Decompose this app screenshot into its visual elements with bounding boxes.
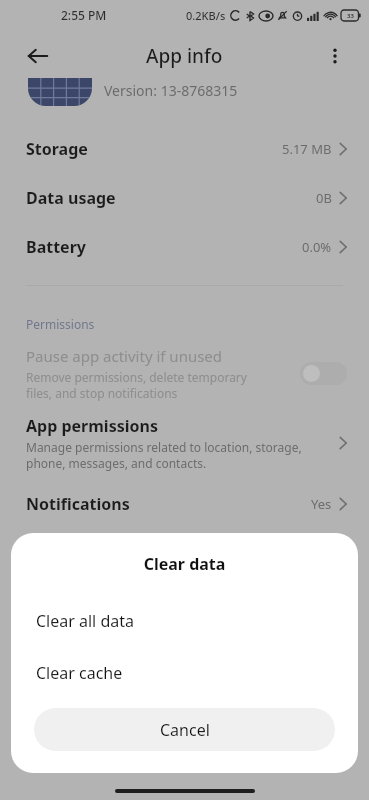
button[interactable]: Clear cache xyxy=(11,651,358,695)
button[interactable]: Cancel xyxy=(34,708,335,751)
staticText: 0.2KB/s xyxy=(186,8,226,23)
staticText: 2:55 PM xyxy=(61,7,107,23)
staticText: Battery xyxy=(26,236,86,258)
button[interactable]: Notifications xyxy=(0,489,369,519)
staticText: Manage permissions related to location, … xyxy=(26,439,302,471)
staticText: Clear cache xyxy=(36,662,123,684)
staticText: 33 xyxy=(347,12,354,20)
button[interactable]: Pause app activity if unused xyxy=(0,346,369,401)
button[interactable]: Clear all data xyxy=(11,599,358,643)
staticText: Permissions xyxy=(26,316,95,332)
staticText: Version: 13-8768315 xyxy=(104,81,238,100)
staticText: 5.17 MB xyxy=(282,140,332,158)
staticText: 0B xyxy=(316,189,332,207)
button[interactable]: Storage xyxy=(0,124,369,173)
staticText: 0.0% xyxy=(302,238,332,256)
staticText: Data usage xyxy=(26,187,116,209)
button[interactable]: Back xyxy=(18,36,58,76)
staticText: Yes xyxy=(311,495,332,513)
button[interactable]: App permissions xyxy=(0,415,369,471)
button[interactable]: Data usage xyxy=(0,173,369,222)
staticText: Clear data xyxy=(11,553,358,575)
staticText: Clear all data xyxy=(36,610,134,632)
staticText: App permissions xyxy=(26,415,158,437)
staticText: Cancel xyxy=(160,719,210,741)
button[interactable]: Battery xyxy=(0,222,369,271)
staticText: Remove permissions, delete temporary fil… xyxy=(26,369,247,401)
staticText: App info xyxy=(146,43,223,69)
staticText: Pause app activity if unused xyxy=(26,346,223,366)
staticText: Storage xyxy=(26,138,88,160)
button[interactable]: More options xyxy=(317,38,353,74)
staticText: Notifications xyxy=(26,493,130,515)
